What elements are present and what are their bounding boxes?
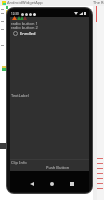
button[interactable]: radio button 2	[10, 25, 50, 30]
button[interactable]: Enrolled	[10, 30, 50, 36]
staticText: AndroidWidgetApp	[7, 0, 43, 5]
staticText: 12:30	[11, 12, 19, 16]
staticText: Clip Info	[11, 160, 27, 165]
button[interactable]: Push Button	[46, 165, 70, 170]
staticText: radio button 2	[11, 25, 38, 30]
button[interactable]: Recents	[68, 180, 76, 188]
staticText: radio button 1	[11, 21, 38, 26]
button[interactable]: radio button 1	[10, 21, 50, 26]
staticText: The Re	[93, 0, 104, 5]
staticText: Enrolled	[20, 31, 36, 36]
button[interactable]: Home	[48, 180, 56, 188]
staticText: TextLabel	[11, 93, 29, 98]
button[interactable]: Back	[28, 180, 36, 188]
